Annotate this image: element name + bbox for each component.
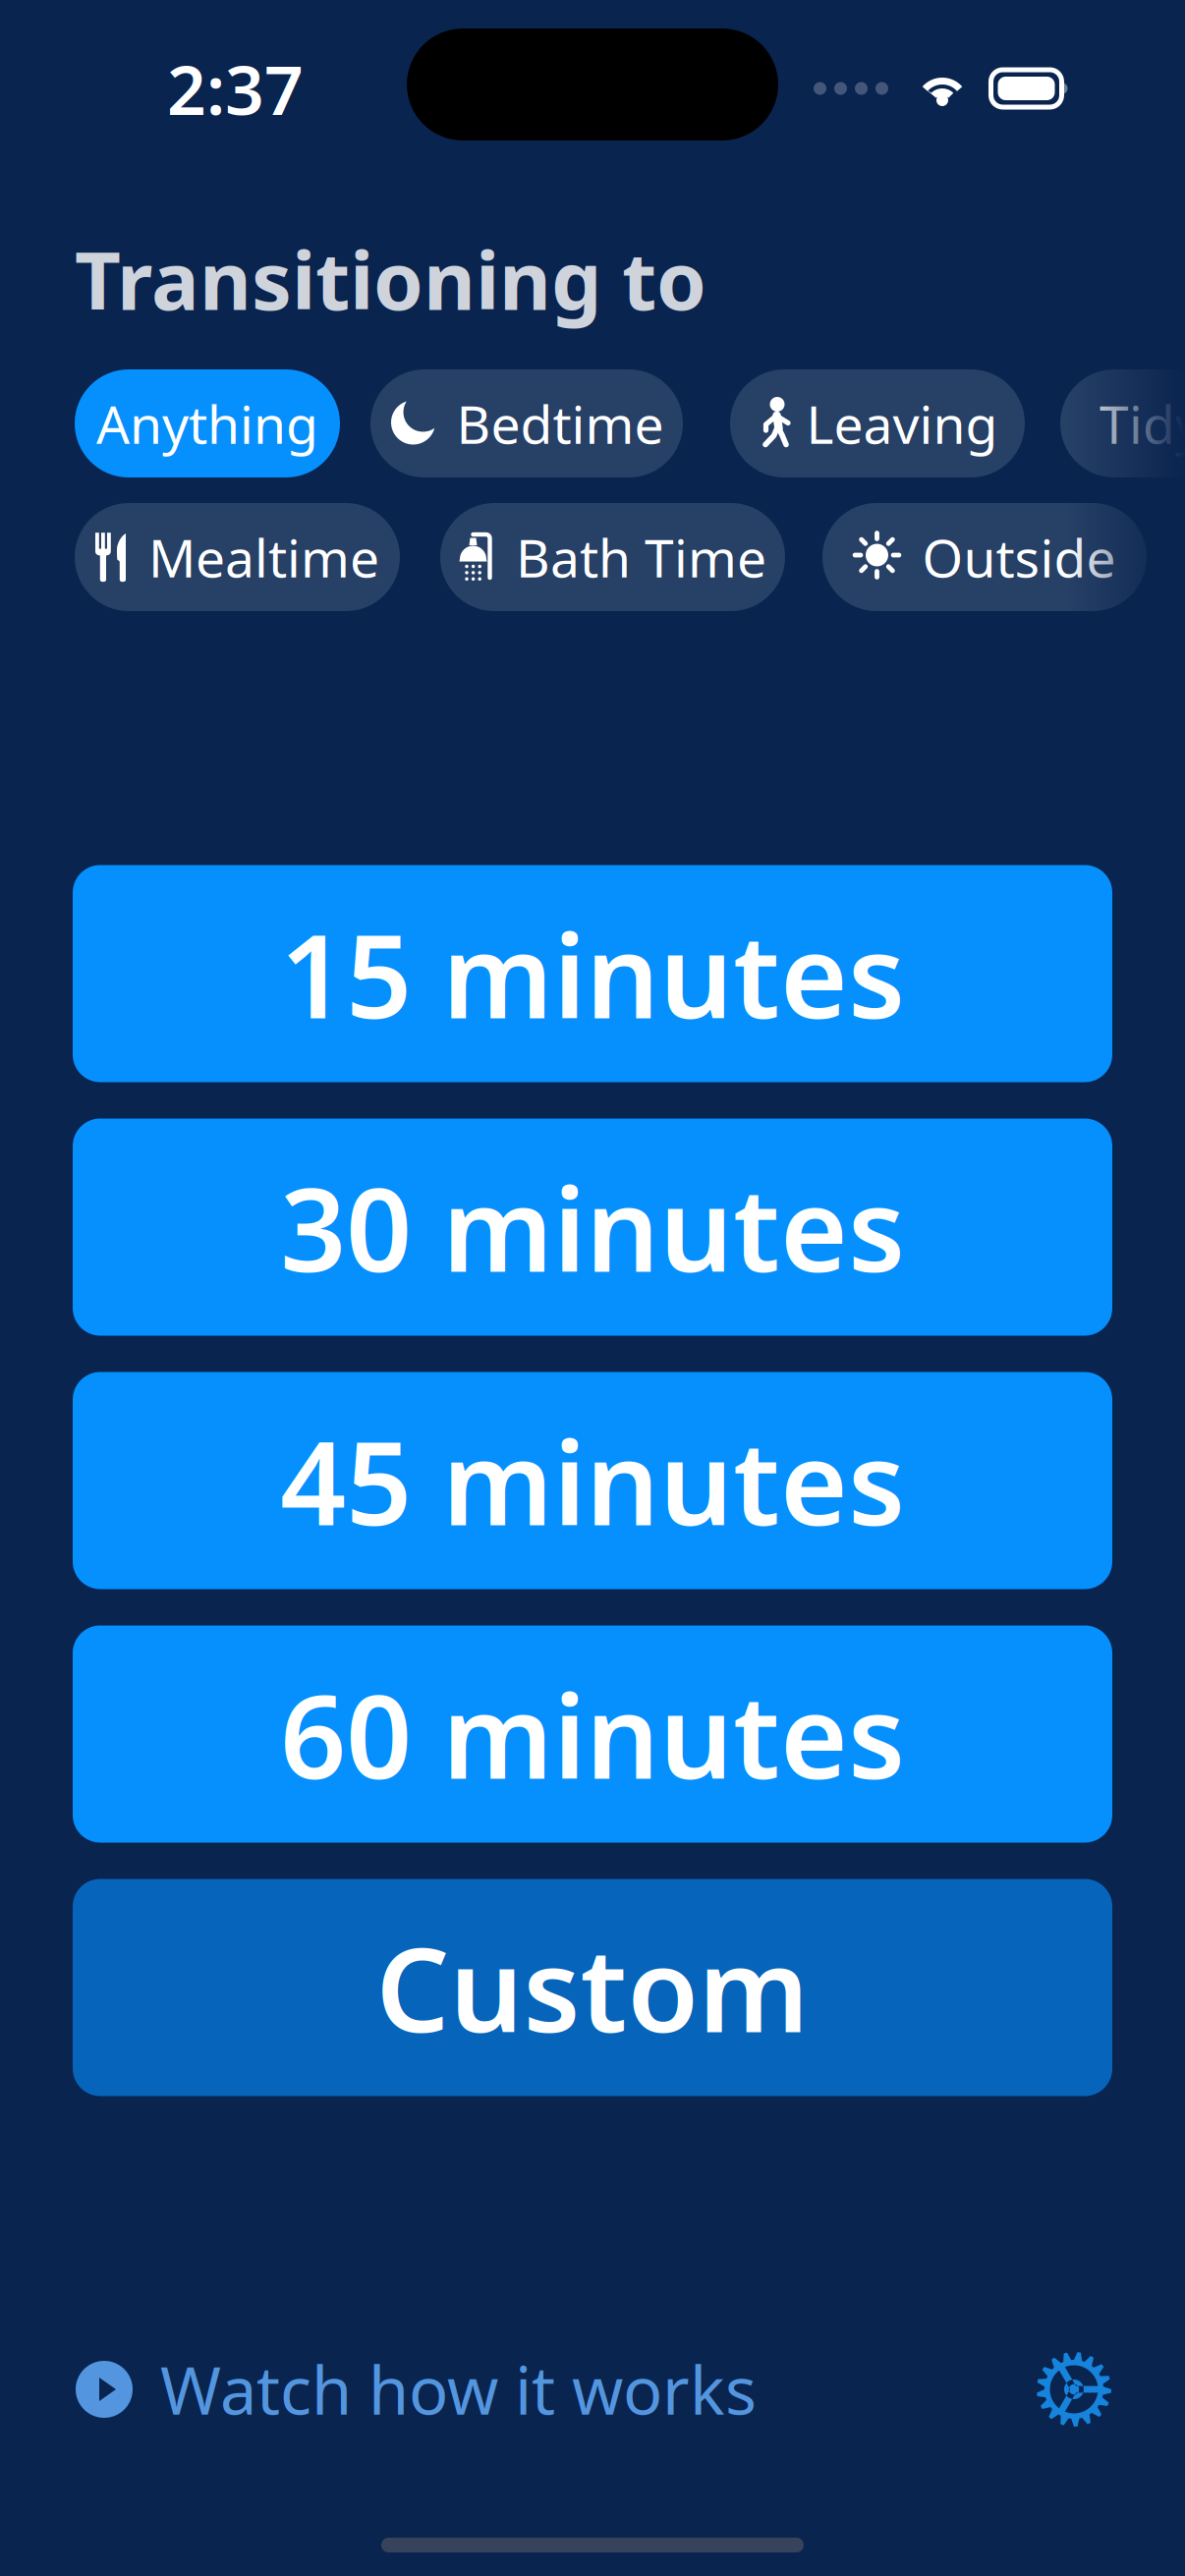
button[interactable]: 30 minutes [73,1119,1112,1336]
staticText: Transitioning to [75,226,706,332]
staticText: Outside [922,522,1116,592]
staticText: Leaving [806,389,998,458]
button[interactable]: Leaving [730,369,1025,477]
staticText: 15 minutes [280,897,905,1050]
button[interactable]: Anything [75,369,340,477]
staticText: Tidy Up [1100,389,1185,458]
button[interactable]: Settings [1036,2351,1112,2428]
staticText: Custom [376,1911,809,2064]
staticText: 60 minutes [280,1658,905,1811]
staticText: Anything [96,389,318,458]
staticText: 30 minutes [280,1151,905,1304]
staticText: Watch how it works [160,2346,757,2433]
staticText: Bath Time [516,522,766,592]
staticText: Bedtime [456,389,664,458]
button[interactable]: 15 minutes [73,865,1112,1082]
button[interactable]: 60 minutes [73,1625,1112,1843]
button[interactable]: Bath Time [440,503,785,611]
button[interactable]: Tidy Up [1060,369,1185,477]
button[interactable]: Mealtime [75,503,400,611]
button[interactable]: Outside [822,503,1147,611]
staticText: 2:37 [167,43,304,134]
button[interactable]: 45 minutes [73,1372,1112,1589]
staticText: Mealtime [148,522,379,592]
staticText: 45 minutes [280,1404,905,1557]
button[interactable]: Bedtime [370,369,683,477]
button[interactable]: Watch how it works [76,2350,757,2429]
button[interactable]: Custom [73,1879,1112,2096]
